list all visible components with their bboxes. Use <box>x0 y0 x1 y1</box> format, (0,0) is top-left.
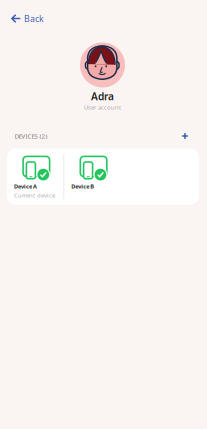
staticText: Device A <box>14 182 37 190</box>
staticText: Current device <box>14 191 55 199</box>
staticText: Adra <box>91 89 114 103</box>
button[interactable]: Device A <box>7 148 63 205</box>
staticText: Device B <box>71 182 94 190</box>
button[interactable]: Add device <box>175 128 188 143</box>
button[interactable]: Device B <box>64 148 121 205</box>
staticText: User account <box>84 103 121 111</box>
button[interactable]: Back <box>0 6 54 31</box>
staticText: Back <box>24 12 44 24</box>
staticText: DEVICES (2) <box>14 132 47 140</box>
